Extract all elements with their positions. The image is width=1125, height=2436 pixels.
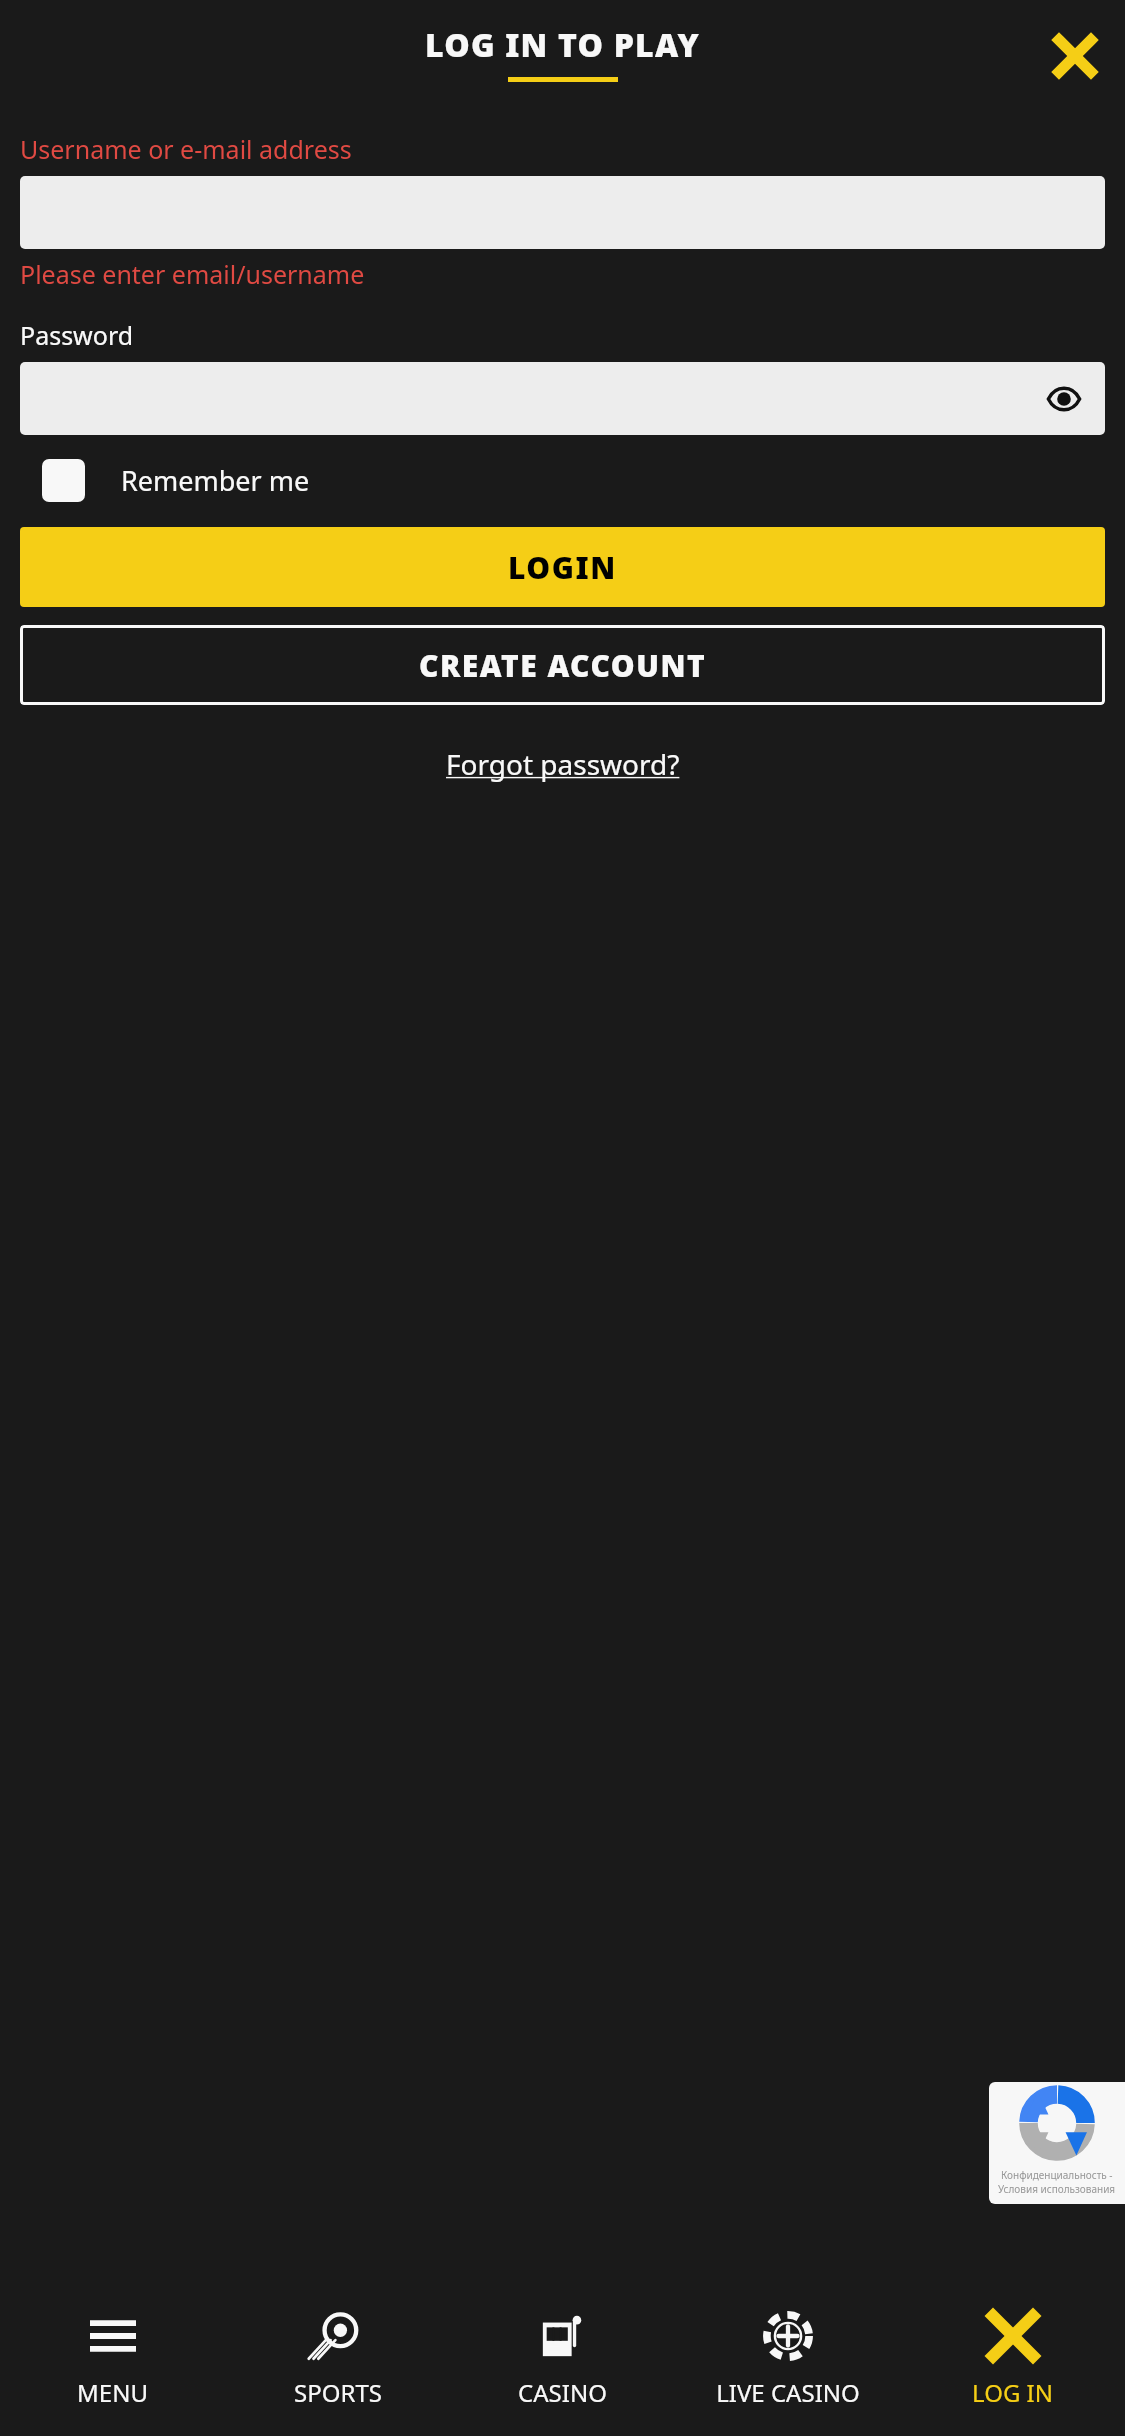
button[interactable]: Show password — [1037, 372, 1091, 426]
staticText: LOG IN — [972, 2376, 1053, 2409]
staticText: Password — [20, 318, 134, 352]
staticText: MENU — [77, 2376, 148, 2409]
button[interactable]: LOGIN — [20, 527, 1105, 607]
button[interactable]: CREATE ACCOUNT — [20, 625, 1105, 705]
button[interactable]: LIVE CASINO — [675, 2280, 900, 2436]
button[interactable]: Forgot password? — [446, 745, 680, 783]
button[interactable]: reCAPTCHA — [989, 2082, 1125, 2204]
button[interactable] — [20, 176, 1105, 249]
staticText: Please enter email/username — [20, 257, 365, 291]
staticText: Remember me — [121, 462, 310, 499]
staticText: LIVE CASINO — [716, 2376, 860, 2409]
button[interactable]: Show password — [20, 362, 1105, 435]
button[interactable]: LOG IN — [900, 2280, 1125, 2436]
staticText: CREATE ACCOUNT — [419, 645, 707, 686]
button[interactable]: Remember me — [20, 459, 1105, 502]
button[interactable]: Close — [1043, 24, 1107, 88]
staticText: Условия использования — [998, 2182, 1116, 2196]
staticText: LOGIN — [508, 547, 617, 588]
staticText: Username or e-mail address — [20, 132, 352, 166]
staticText: LOG IN TO PLAY — [425, 23, 700, 67]
button[interactable]: SPORTS — [225, 2280, 450, 2436]
staticText: SPORTS — [294, 2376, 382, 2409]
staticText: Конфиденциальность - — [1001, 2168, 1113, 2182]
button[interactable]: MENU — [0, 2280, 225, 2436]
button[interactable]: CASINO — [450, 2280, 675, 2436]
staticText: CASINO — [518, 2376, 607, 2409]
